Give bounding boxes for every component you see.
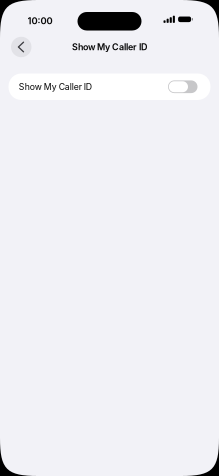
staticText: Show My Caller ID xyxy=(19,81,92,92)
staticText: Show My Caller ID xyxy=(72,42,147,52)
staticText: 10:00 xyxy=(27,15,52,26)
button[interactable]: Back xyxy=(11,37,31,57)
button[interactable]: Show My Caller ID xyxy=(8,73,210,100)
